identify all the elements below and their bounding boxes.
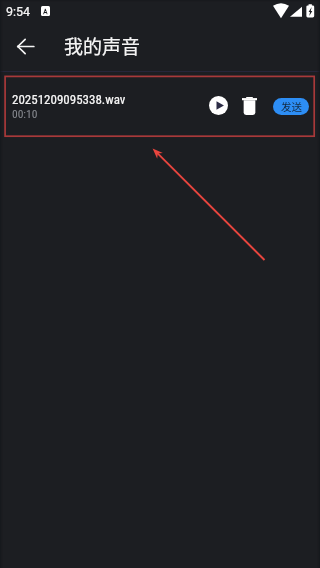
button[interactable]: Back [9, 30, 41, 62]
button[interactable]: 20251209095338.wav [0, 72, 320, 138]
staticText: 20251209095338.wav [12, 92, 126, 107]
staticText: 我的声音 [64, 32, 141, 60]
staticText: A [43, 7, 48, 16]
staticText: 9:54 [6, 4, 31, 19]
button[interactable]: Delete [240, 95, 259, 117]
button[interactable]: 发送 [273, 98, 309, 115]
button[interactable]: Play [209, 96, 228, 115]
staticText: 00:10 [12, 107, 38, 120]
staticText: 发送 [281, 99, 302, 114]
